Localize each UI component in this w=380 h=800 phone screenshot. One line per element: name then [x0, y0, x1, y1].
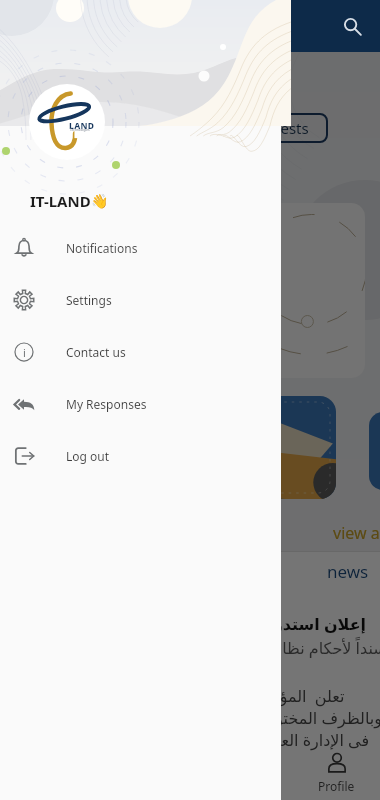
staticText: Notifications	[66, 240, 138, 256]
staticText: وبالظرف المختوم عن طريق	[196, 707, 380, 729]
staticText: تعلن المؤسسة العامة	[196, 685, 345, 707]
button[interactable]: New Requests	[30, 203, 365, 378]
staticText: Profile	[318, 778, 355, 794]
staticText: New Requests	[46, 347, 160, 370]
staticText: Log out	[66, 448, 110, 464]
staticText: إعلان استدراج عروض	[200, 613, 367, 635]
staticText: Technologies	[70, 128, 90, 132]
staticText: My Requests	[219, 118, 309, 138]
staticText: i	[23, 345, 26, 360]
button[interactable]	[369, 412, 380, 490]
button[interactable]	[22, 396, 336, 499]
button[interactable]: i	[0, 326, 281, 378]
staticText: IT-LAND	[30, 191, 91, 211]
button[interactable]: Log out	[0, 430, 281, 482]
staticText: news	[327, 560, 369, 583]
button[interactable]: Profile	[318, 752, 355, 794]
button[interactable]	[0, 52, 380, 800]
button[interactable]: My Responses	[0, 378, 281, 430]
staticText: سنداً لأحكام نظام المنافسات	[198, 637, 380, 659]
staticText: Contact us	[66, 344, 126, 360]
button[interactable]: Notifications	[0, 222, 281, 274]
button[interactable]: Settings	[0, 274, 281, 326]
staticText: LAND	[69, 120, 95, 132]
button[interactable]: Search	[334, 8, 370, 44]
staticText: view all	[333, 522, 380, 544]
staticText: فى الإدارة العامة للمشاريع	[196, 729, 370, 751]
staticText: My Responses	[66, 396, 147, 412]
button[interactable]: My Requests	[200, 113, 328, 143]
staticText: Settings	[66, 292, 112, 308]
staticText: 👋	[91, 193, 109, 209]
button[interactable]: view all	[329, 520, 380, 546]
